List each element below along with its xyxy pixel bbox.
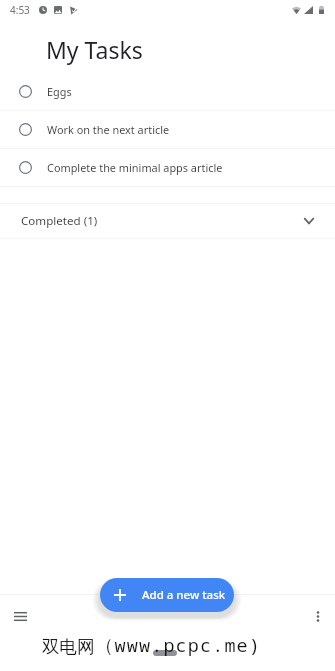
staticText: Completed (1)	[21, 213, 98, 229]
button[interactable]: Complete the minimal apps article	[0, 149, 335, 186]
button[interactable]: Eggs	[0, 73, 335, 110]
button[interactable]: Work on the next article	[0, 111, 335, 148]
staticText: 双电网	[42, 636, 95, 658]
button[interactable]: Menu	[0, 601, 40, 631]
staticText: Complete the minimal apps article	[47, 160, 223, 175]
button[interactable]: Completed (1)	[0, 204, 335, 238]
staticText: （www.pcpc.me)	[95, 632, 262, 657]
staticText: Eggs	[47, 84, 72, 99]
button[interactable]: More options	[300, 601, 335, 631]
staticText: My Tasks	[46, 34, 143, 65]
staticText: Add a new task	[142, 587, 226, 603]
staticText: Work on the next article	[47, 122, 170, 137]
button[interactable]: Add a new task	[100, 578, 234, 612]
staticText: 4:53	[10, 3, 30, 17]
